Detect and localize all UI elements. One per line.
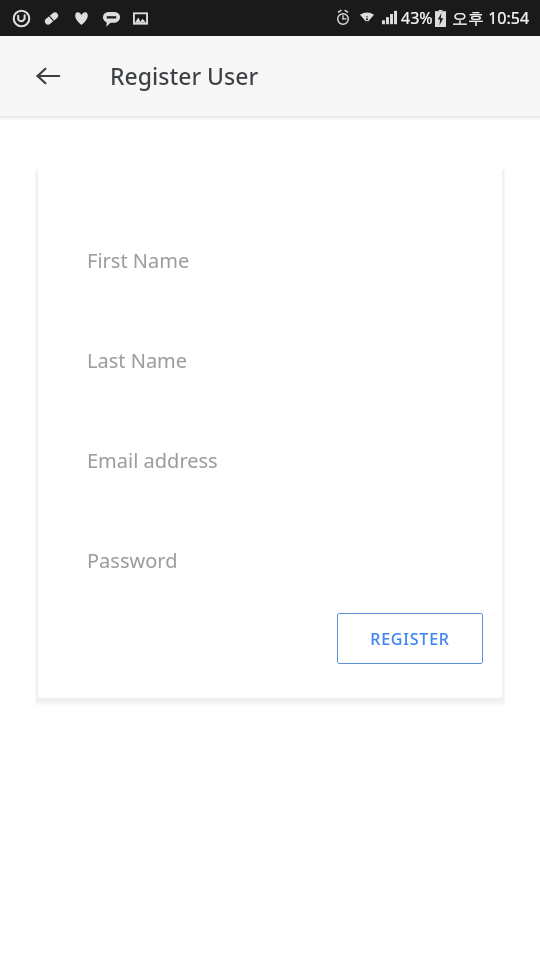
button[interactable]: Last Name bbox=[38, 345, 502, 375]
button[interactable]: First Name bbox=[38, 245, 502, 275]
staticText: Last Name bbox=[87, 347, 188, 374]
button[interactable]: Password bbox=[38, 545, 502, 575]
staticText: First Name bbox=[87, 247, 190, 274]
staticText: REGISTER bbox=[370, 628, 450, 650]
staticText: Password bbox=[87, 547, 178, 574]
staticText: 43% bbox=[401, 7, 433, 29]
staticText: Register User bbox=[110, 60, 259, 91]
button[interactable]: REGISTER bbox=[337, 613, 483, 664]
staticText: Email address bbox=[87, 447, 218, 474]
staticText: 오후 10:54 bbox=[452, 7, 530, 29]
button[interactable]: Back bbox=[24, 52, 72, 100]
button[interactable]: Email address bbox=[38, 445, 502, 475]
